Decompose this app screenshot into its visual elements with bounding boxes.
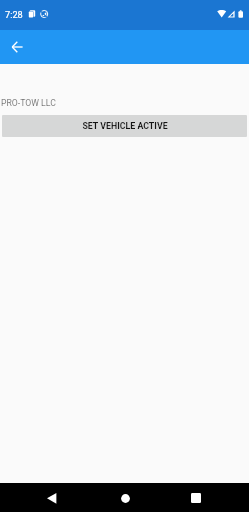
staticText: PRO-TOW LLC [1,98,56,108]
button[interactable]: Navigate up [0,30,34,64]
staticText: SET VEHICLE ACTIVE [82,121,168,131]
button[interactable]: Recent apps [182,484,210,512]
staticText: 7:28 [5,9,23,20]
button[interactable]: Back [38,484,66,512]
button[interactable]: Home [111,484,139,512]
button[interactable]: SET VEHICLE ACTIVE [2,115,247,137]
